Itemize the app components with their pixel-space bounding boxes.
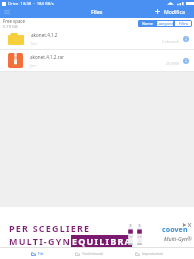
button[interactable]: Nome xyxy=(138,20,156,27)
staticText: akonet.4.1.2.rar xyxy=(30,54,64,60)
button[interactable]: Info xyxy=(183,58,189,64)
staticText: cooven xyxy=(162,225,188,235)
button[interactable]: Modifica xyxy=(155,8,185,15)
staticText: Categoria xyxy=(156,21,174,26)
staticText: Free space xyxy=(3,18,25,24)
staticText: 28,9 MB xyxy=(166,61,179,66)
staticText: Nome xyxy=(142,21,153,26)
button[interactable]: Menu xyxy=(3,8,11,16)
staticText: PER SCEGLIERE xyxy=(9,222,91,234)
button[interactable]: Impostazioni xyxy=(135,248,163,259)
staticText: Modifica xyxy=(164,8,185,15)
staticText: Filtra xyxy=(179,21,188,26)
staticText: Trasferimenti xyxy=(82,251,104,256)
button[interactable]: Info xyxy=(183,36,189,42)
button[interactable]: Filtra xyxy=(174,20,192,27)
staticText: 2 elementi xyxy=(162,39,179,44)
staticText: Impostazioni xyxy=(142,251,163,256)
staticText: Drive 18:38 · 184 KB/s xyxy=(8,1,54,7)
staticText: Ieri xyxy=(30,63,36,68)
button[interactable]: PER SCEGLIERE xyxy=(0,207,194,247)
staticText: MULTI-GYN xyxy=(9,235,71,247)
staticText: Ieri xyxy=(31,41,37,46)
staticText: File xyxy=(38,251,44,256)
button[interactable]: File xyxy=(31,248,44,259)
button[interactable]: akonet.4.1.2.rar xyxy=(0,50,194,72)
button[interactable]: akonet.4.1.2 xyxy=(0,28,194,50)
staticText: Multi-Gyn® xyxy=(164,235,192,242)
staticText: akonet.4.1.2 xyxy=(31,32,58,38)
staticText: Files xyxy=(91,8,103,15)
button[interactable]: Categoria xyxy=(156,20,174,27)
staticText: 5.70 GB xyxy=(3,24,18,28)
button[interactable]: Trasferimenti xyxy=(75,248,104,259)
staticText: EQUILIBRA xyxy=(72,235,132,247)
